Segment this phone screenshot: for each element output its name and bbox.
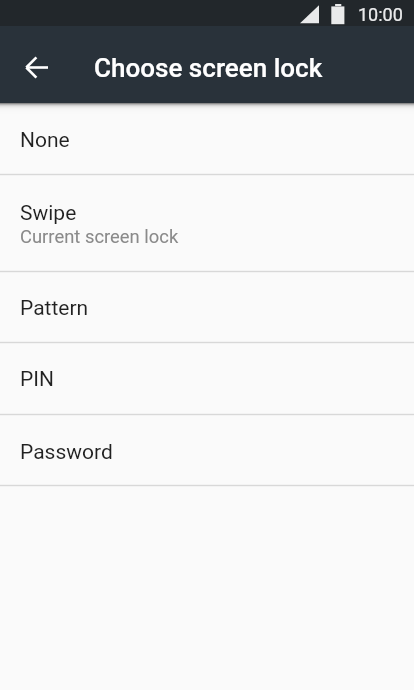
button[interactable]: Password	[0, 415, 414, 485]
button[interactable]: None	[0, 103, 414, 174]
staticText: Password	[20, 440, 113, 465]
staticText: None	[20, 128, 70, 153]
staticText: Choose screen lock	[94, 53, 323, 83]
staticText: PIN	[20, 367, 54, 392]
staticText: 10:00	[358, 4, 403, 25]
button[interactable]: Back	[0, 26, 74, 103]
button[interactable]: Swipe	[0, 175, 414, 271]
staticText: Current screen lock	[20, 226, 179, 248]
button[interactable]: PIN	[0, 343, 414, 414]
button[interactable]: Pattern	[0, 272, 414, 342]
staticText: Swipe	[20, 201, 77, 226]
staticText: Pattern	[20, 296, 89, 321]
